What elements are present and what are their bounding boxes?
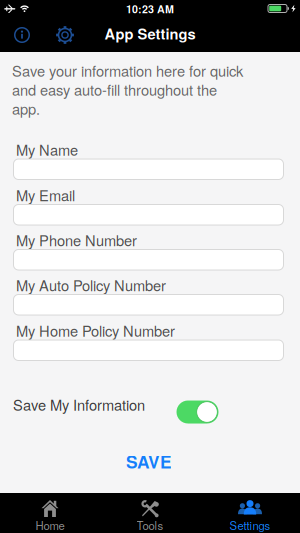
staticText: My Email [16, 184, 75, 205]
staticText: Save My Information [13, 394, 145, 415]
staticText: My Name [16, 139, 78, 160]
staticText: My Auto Policy Number [16, 274, 166, 295]
staticText: and easy auto-fill throughout the [12, 79, 217, 100]
button[interactable]: My Auto Policy Number [13, 294, 284, 315]
button[interactable]: My Email [13, 204, 284, 225]
button[interactable]: Save My Information [176, 400, 218, 423]
staticText: SAVE [126, 449, 172, 474]
button[interactable]: My Home Policy Number [13, 339, 284, 361]
staticText: Tools [136, 517, 163, 533]
button[interactable]: Settings [49, 18, 81, 52]
staticText: Home [35, 517, 64, 533]
staticText: Save your information here for quick [12, 60, 243, 81]
button[interactable]: Info [7, 18, 37, 52]
staticText: App Settings [104, 23, 195, 44]
button[interactable]: My Phone Number [13, 249, 284, 270]
button[interactable]: SAVE [119, 449, 179, 473]
button[interactable]: Tools [100, 493, 200, 533]
button[interactable]: Settings [200, 493, 300, 533]
staticText: My Phone Number [16, 229, 137, 250]
button[interactable]: Home [0, 493, 100, 533]
staticText: My Home Policy Number [16, 320, 175, 341]
button[interactable]: My Name [13, 158, 284, 180]
staticText: app. [12, 98, 40, 119]
staticText: Settings [229, 517, 270, 533]
staticText: 10:23 AM [126, 1, 174, 17]
